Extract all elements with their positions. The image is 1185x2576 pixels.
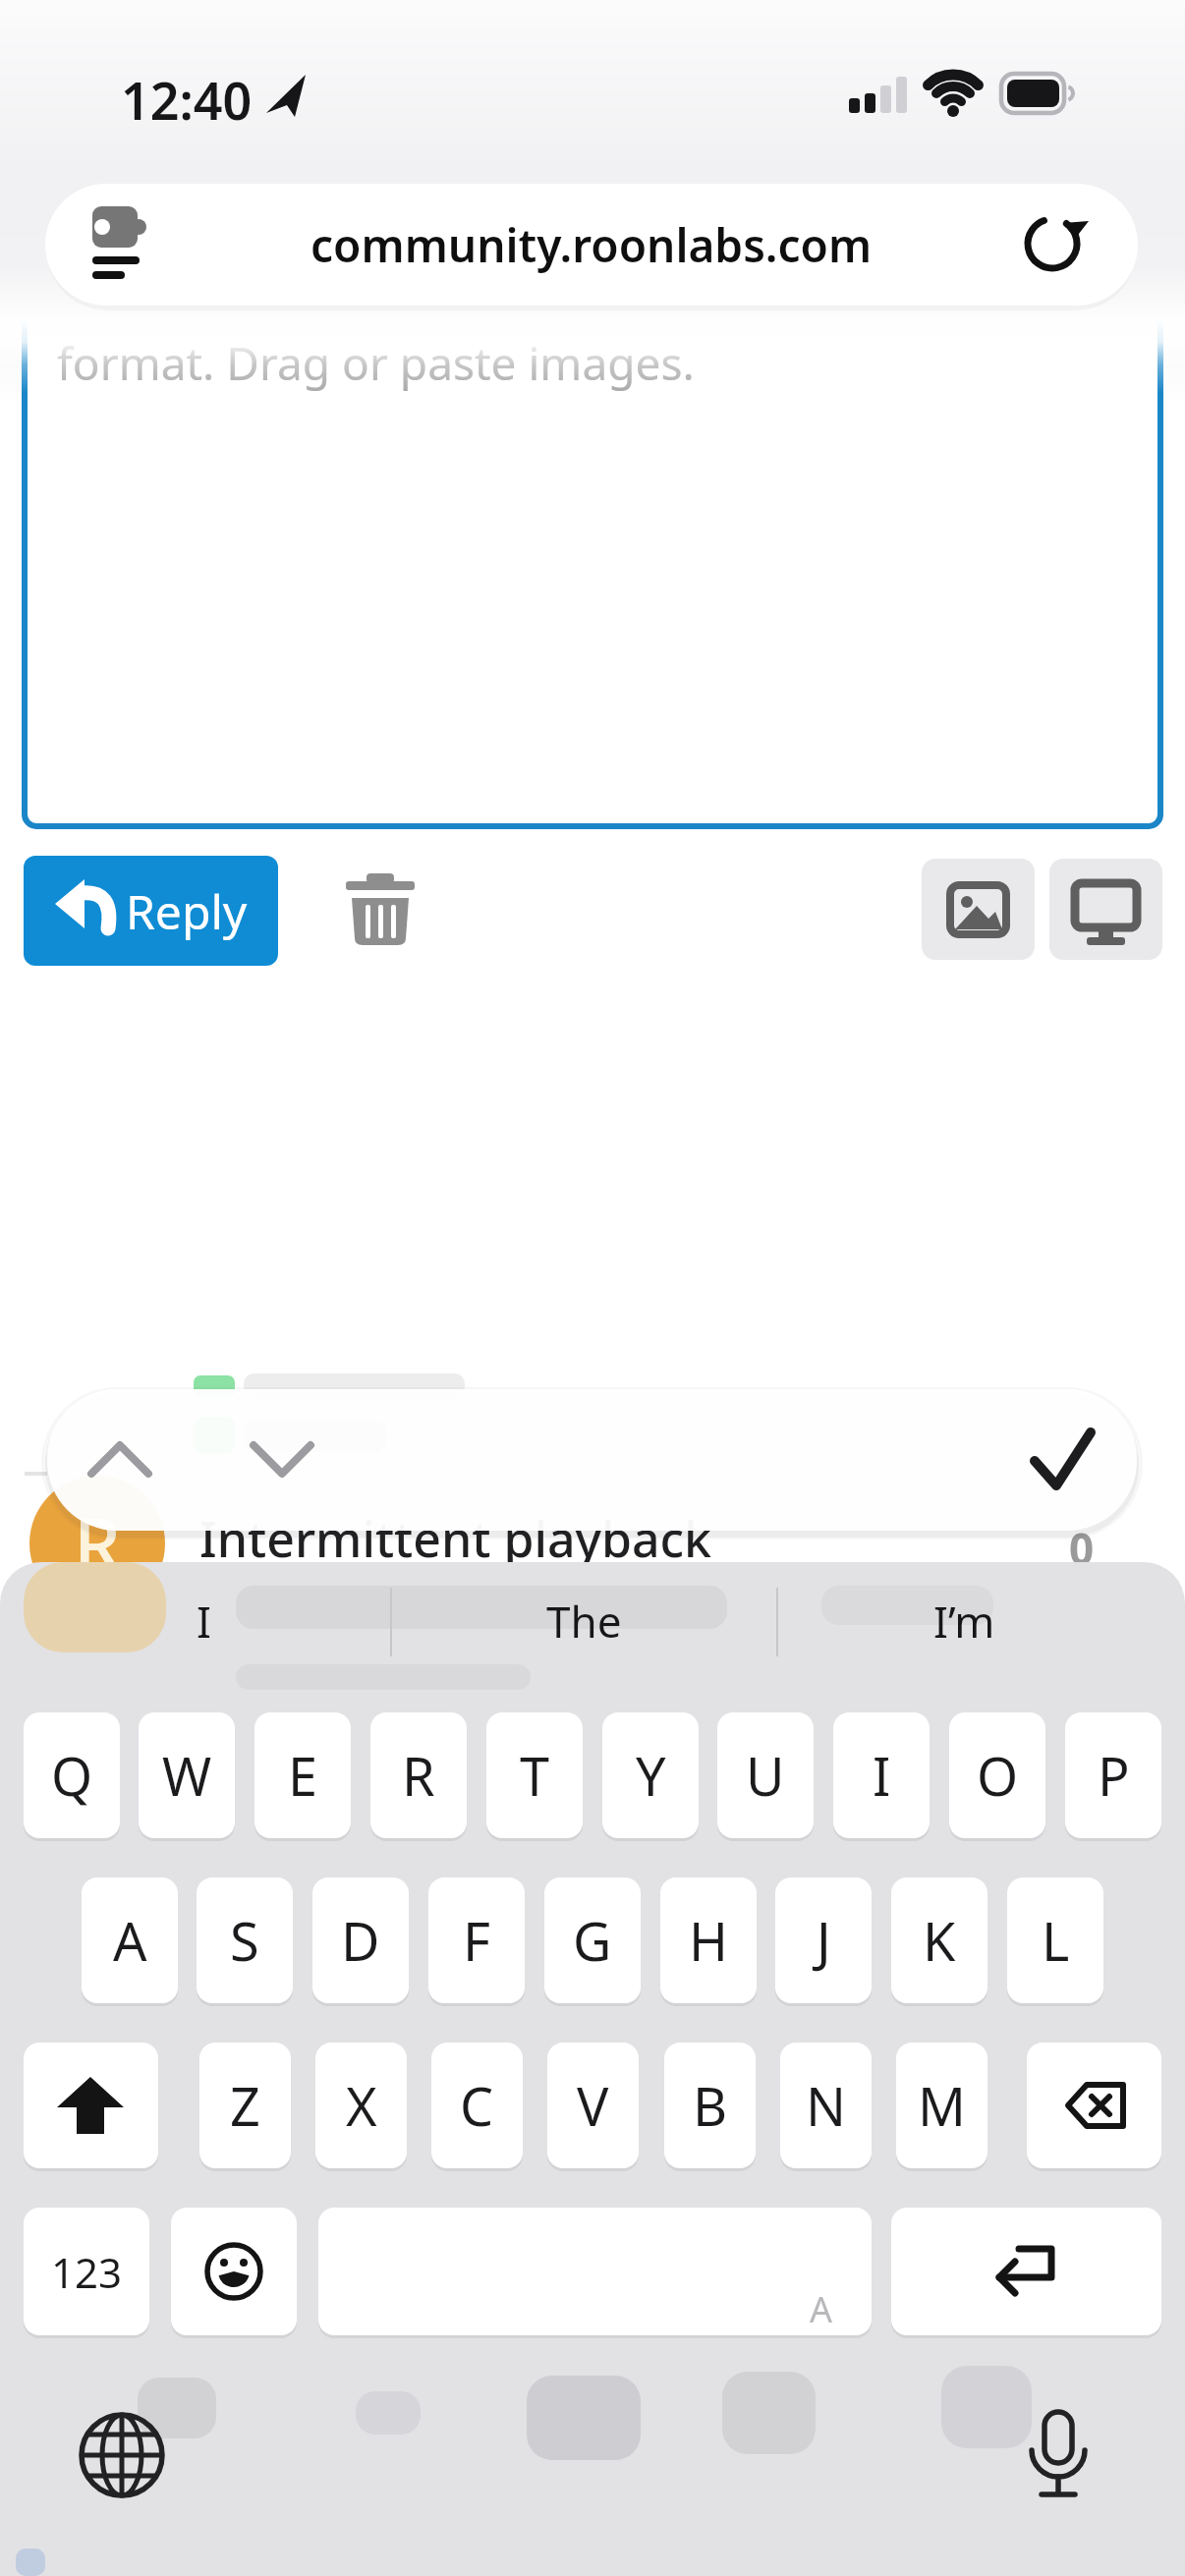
staticText: 12:40 xyxy=(121,65,253,124)
staticText: The xyxy=(546,1592,622,1651)
button[interactable]: Y xyxy=(602,1712,699,1838)
button[interactable]: L xyxy=(1007,1877,1103,2003)
staticText: 123 xyxy=(51,2244,123,2300)
button[interactable]: The xyxy=(505,1580,662,1662)
button[interactable]: O xyxy=(949,1712,1045,1838)
staticText: H xyxy=(689,1904,729,1977)
button[interactable]: A xyxy=(318,2208,872,2335)
staticText: A xyxy=(810,2285,833,2333)
staticText: N xyxy=(806,2069,847,2142)
staticText: Y xyxy=(636,1739,666,1812)
staticText: R xyxy=(74,1492,122,1595)
button[interactable] xyxy=(891,2208,1161,2335)
staticText: I xyxy=(197,1592,211,1651)
button[interactable] xyxy=(25,285,1160,826)
staticText: W xyxy=(162,1739,212,1812)
staticText: C xyxy=(460,2069,494,2142)
staticText: B xyxy=(693,2069,728,2142)
staticText: D xyxy=(341,1904,380,1977)
staticText: K xyxy=(923,1904,956,1977)
staticText: V xyxy=(577,2069,609,2142)
button[interactable]: C xyxy=(431,2043,523,2168)
staticText: E xyxy=(288,1739,318,1812)
staticText: 0 xyxy=(1069,1519,1095,1578)
staticText: O xyxy=(977,1739,1019,1812)
button[interactable]: E xyxy=(254,1712,351,1838)
button[interactable]: M xyxy=(896,2043,987,2168)
staticText: I xyxy=(873,1739,891,1812)
button[interactable] xyxy=(171,2208,297,2335)
button[interactable]: N xyxy=(780,2043,872,2168)
staticText: U xyxy=(746,1739,785,1812)
button[interactable]: D xyxy=(312,1877,409,2003)
staticText: format. Drag or paste images. xyxy=(57,332,695,394)
button[interactable]: Reply xyxy=(24,856,278,966)
staticText: L xyxy=(1042,1904,1070,1977)
staticText: R xyxy=(402,1739,435,1812)
staticText: Intermittent playback xyxy=(199,1505,711,1572)
staticText: J xyxy=(817,1904,831,1977)
staticText: S xyxy=(230,1904,259,1977)
button[interactable]: T xyxy=(486,1712,583,1838)
button[interactable]: K xyxy=(891,1877,987,2003)
staticText: G xyxy=(573,1904,612,1977)
button[interactable]: Q xyxy=(24,1712,120,1838)
button[interactable]: I’m xyxy=(885,1580,1043,1662)
button[interactable]: W xyxy=(139,1712,235,1838)
button[interactable]: 123 xyxy=(24,2208,149,2335)
staticText: X xyxy=(346,2069,377,2142)
staticText: Reply xyxy=(126,879,248,943)
staticText: community.roonlabs.com xyxy=(310,214,873,276)
button[interactable] xyxy=(1049,859,1162,960)
button[interactable]: U xyxy=(717,1712,814,1838)
button[interactable]: R xyxy=(370,1712,467,1838)
staticText: A xyxy=(113,1904,147,1977)
staticText: M xyxy=(918,2069,966,2142)
button[interactable] xyxy=(69,2402,177,2510)
button[interactable] xyxy=(47,1389,411,1528)
button[interactable] xyxy=(339,869,423,958)
button[interactable]: V xyxy=(547,2043,639,2168)
staticText: F xyxy=(463,1904,491,1977)
button[interactable] xyxy=(24,2043,158,2168)
button[interactable]: I xyxy=(125,1580,282,1662)
button[interactable]: X xyxy=(315,2043,407,2168)
button[interactable]: I xyxy=(833,1712,930,1838)
button[interactable]: J xyxy=(775,1877,872,2003)
button[interactable]: B xyxy=(664,2043,756,2168)
staticText: Z xyxy=(230,2069,260,2142)
staticText: Q xyxy=(51,1739,93,1812)
button[interactable] xyxy=(983,1389,1137,1528)
button[interactable] xyxy=(922,859,1035,960)
button[interactable]: Intermittent playback xyxy=(199,1505,711,1572)
button[interactable]: community.roonlabs.com xyxy=(45,184,1138,306)
button[interactable]: G xyxy=(544,1877,641,2003)
staticText: T xyxy=(520,1739,550,1812)
button[interactable]: Z xyxy=(199,2043,291,2168)
button[interactable] xyxy=(1012,2402,1110,2510)
button[interactable]: P xyxy=(1065,1712,1161,1838)
staticText: I’m xyxy=(933,1592,995,1651)
button[interactable]: H xyxy=(660,1877,757,2003)
staticText: P xyxy=(1098,1739,1130,1812)
button[interactable]: S xyxy=(197,1877,293,2003)
button[interactable]: F xyxy=(428,1877,525,2003)
button[interactable] xyxy=(1027,2043,1161,2168)
button[interactable]: A xyxy=(82,1877,178,2003)
